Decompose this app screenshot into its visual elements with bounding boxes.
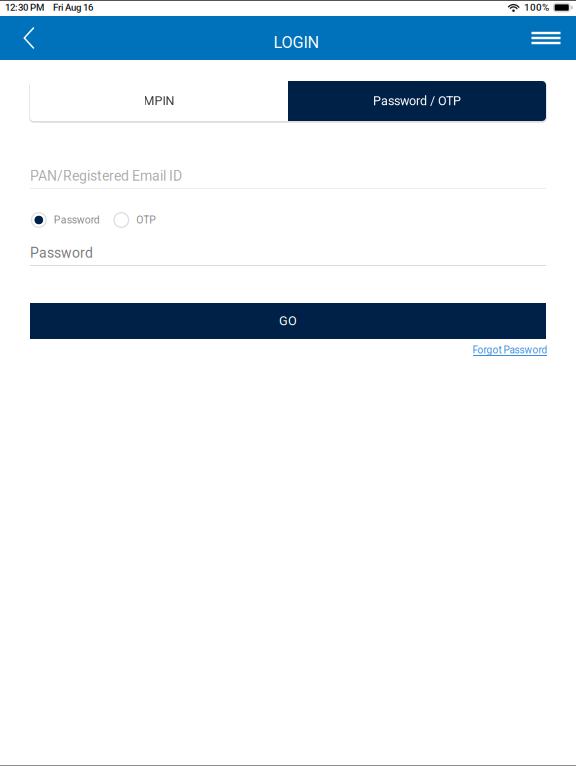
button[interactable]: Menu — [524, 16, 568, 60]
staticText: LOGIN — [273, 33, 319, 52]
staticText: 100% — [524, 2, 549, 13]
button[interactable]: GO — [30, 303, 546, 339]
staticText: GO — [279, 314, 297, 328]
staticText: Forgot Password — [472, 344, 547, 356]
staticText: Password — [54, 214, 100, 226]
button[interactable]: Forgot Password — [470, 345, 550, 356]
staticText: Fri Aug 16 — [53, 2, 93, 13]
staticText: Password / OTP — [373, 94, 461, 108]
staticText: Password — [30, 245, 93, 261]
staticText: OTP — [136, 214, 156, 226]
button[interactable]: Back — [7, 16, 51, 60]
button[interactable]: Password — [31, 210, 100, 230]
staticText: 12:30 PM — [5, 2, 44, 13]
staticText: PAN/Registered Email ID — [30, 168, 182, 184]
button[interactable]: MPIN — [30, 81, 288, 121]
button[interactable]: OTP — [113, 210, 156, 230]
button[interactable]: Password / OTP — [288, 81, 546, 121]
staticText: MPIN — [143, 94, 174, 108]
